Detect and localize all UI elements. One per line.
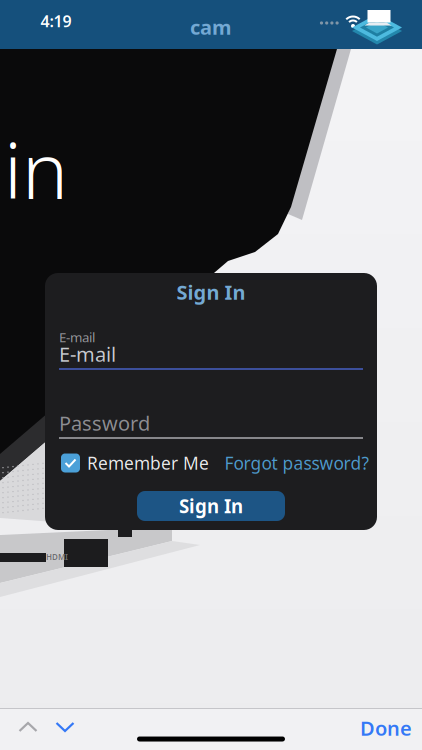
button[interactable]: Sign In bbox=[137, 491, 285, 521]
button[interactable]: Previous field bbox=[15, 721, 40, 735]
staticText: Sign In bbox=[176, 279, 245, 305]
staticText: HDMI bbox=[46, 552, 68, 562]
staticText: Forgot password? bbox=[224, 451, 369, 474]
staticText: Done bbox=[360, 715, 412, 741]
staticText: E-mail bbox=[59, 341, 116, 367]
button[interactable]: Next field bbox=[52, 721, 77, 735]
staticText: Remember Me bbox=[87, 451, 209, 474]
button[interactable]: Password bbox=[59, 414, 363, 444]
button[interactable]: Remember Me bbox=[61, 453, 80, 472]
staticText: Password bbox=[59, 410, 150, 436]
button[interactable]: Remember Me bbox=[87, 451, 247, 474]
staticText: Sign In bbox=[179, 494, 243, 518]
staticText: E-mail bbox=[59, 328, 95, 346]
staticText: in bbox=[4, 118, 68, 220]
staticText: cam bbox=[190, 14, 232, 40]
button[interactable]: Done bbox=[360, 715, 412, 741]
staticText: 4:19 bbox=[40, 10, 71, 32]
button[interactable]: Forgot password? bbox=[224, 451, 369, 474]
button[interactable]: E-mail bbox=[59, 341, 363, 371]
